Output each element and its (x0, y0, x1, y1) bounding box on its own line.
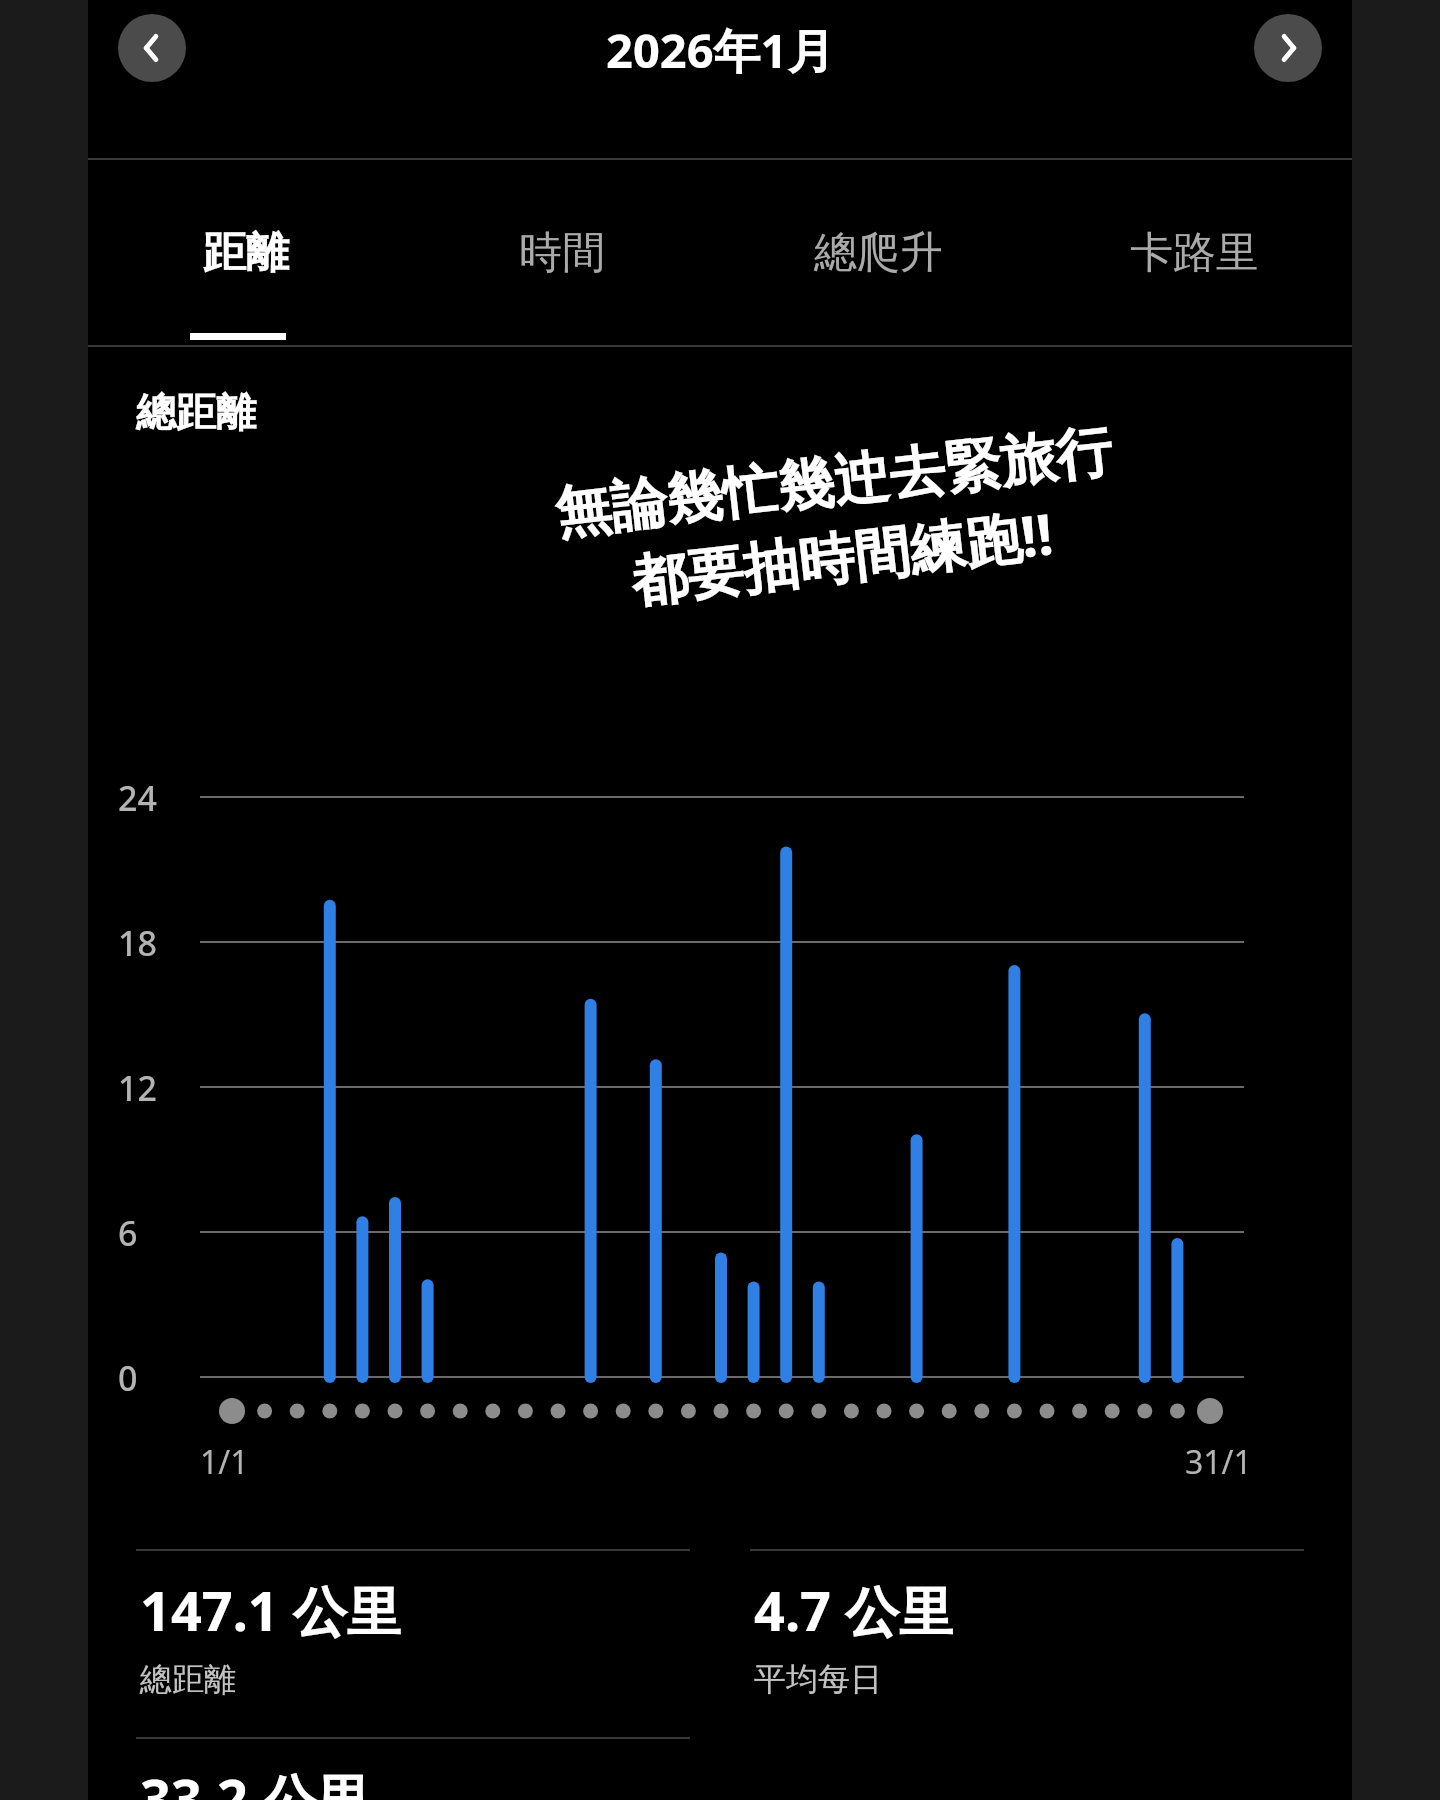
staticText: 31/1 (1185, 1440, 1252, 1484)
staticText: 24 (118, 775, 157, 821)
staticText: 總距離 (140, 1659, 236, 1699)
staticText: 18 (118, 920, 157, 966)
button[interactable]: Previous month (118, 14, 186, 82)
staticText: 時間 (519, 226, 605, 280)
staticText: 0 (118, 1355, 138, 1401)
button[interactable]: 卡路里 (1036, 160, 1352, 345)
button[interactable]: 時間 (404, 160, 720, 345)
staticText: 33.2 公里 (140, 1761, 370, 1800)
staticText: 總爬升 (814, 226, 943, 280)
button[interactable]: Next month (1254, 14, 1322, 82)
staticText: 147.1 公里 (140, 1573, 401, 1647)
button[interactable]: 4.7 公里 (750, 1549, 1304, 1699)
button[interactable]: 33.2 公里 (136, 1737, 690, 1800)
button[interactable]: 147.1 公里 (136, 1549, 690, 1699)
button[interactable]: 總爬升 (720, 160, 1036, 345)
staticText: 平均每日 (754, 1659, 882, 1699)
staticText: 總距離 (136, 387, 256, 437)
button[interactable]: 距離 (88, 160, 404, 345)
staticText: 12 (118, 1065, 157, 1111)
staticText: 距離 (203, 226, 289, 280)
staticText: 6 (118, 1210, 138, 1256)
staticText: 4.7 公里 (754, 1573, 953, 1647)
staticText: 都要抽時間練跑!! (627, 494, 1057, 617)
staticText: 1/1 (200, 1440, 249, 1484)
staticText: 無論幾忙幾迚去緊旅行 (551, 416, 1116, 550)
staticText: 2026年1月 (606, 18, 835, 82)
staticText: 卡路里 (1130, 226, 1259, 280)
